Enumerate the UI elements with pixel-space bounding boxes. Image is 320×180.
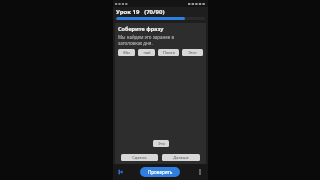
staticText: Урок 19 (70/90) bbox=[116, 8, 165, 16]
staticText: Это bbox=[158, 141, 165, 146]
button[interactable]: Дальше bbox=[162, 154, 200, 161]
staticText: Поиск bbox=[163, 50, 175, 55]
staticText: Дальше bbox=[173, 155, 189, 160]
button[interactable]: More options bbox=[195, 167, 205, 177]
staticText: Соберите фразу bbox=[118, 25, 164, 32]
staticText: най bbox=[143, 50, 151, 55]
staticText: Мы bbox=[123, 50, 130, 55]
staticText: Мы найдем это заранее в заголовках дня. bbox=[118, 34, 174, 46]
button[interactable]: Сдаюсь bbox=[121, 154, 158, 161]
button[interactable]: Проверить bbox=[140, 167, 180, 177]
button[interactable]: Back bbox=[116, 167, 126, 177]
button[interactable]: Это bbox=[153, 140, 169, 147]
button[interactable]: Этот bbox=[182, 49, 203, 56]
button[interactable]: Мы bbox=[118, 49, 135, 56]
staticText: Проверить bbox=[148, 169, 173, 175]
staticText: Этот bbox=[188, 50, 197, 55]
button[interactable]: Поиск bbox=[158, 49, 179, 56]
staticText: Сдаюсь bbox=[132, 155, 147, 160]
button[interactable]: най bbox=[138, 49, 155, 56]
